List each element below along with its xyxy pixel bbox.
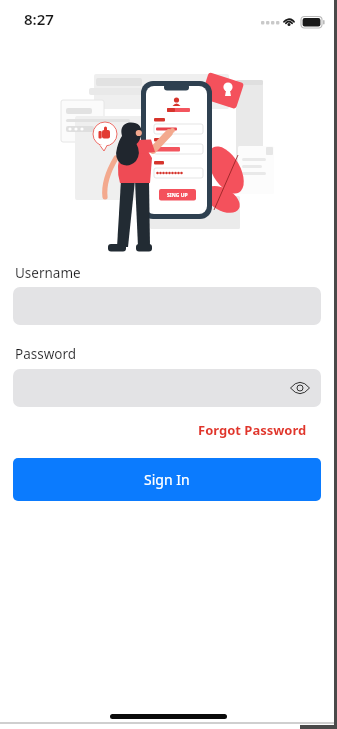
staticText: Username — [15, 264, 81, 282]
staticText: Sign In — [144, 470, 190, 489]
button[interactable] — [290, 382, 310, 394]
button[interactable]: Forgot Password — [198, 421, 307, 439]
staticText: SING UP — [167, 192, 188, 199]
staticText: Password — [15, 345, 77, 363]
button[interactable] — [13, 369, 321, 407]
staticText: 8:27 — [24, 9, 54, 29]
button[interactable]: Sign In — [13, 458, 321, 501]
